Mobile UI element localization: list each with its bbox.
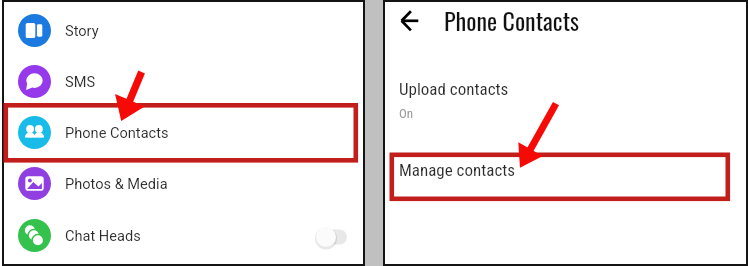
staticText: Photos & Media <box>65 175 168 192</box>
button[interactable]: Chat Heads <box>0 210 363 261</box>
button[interactable]: Chat Heads toggle <box>312 225 354 249</box>
staticText: Story <box>65 22 99 39</box>
staticText: Phone Contacts <box>65 124 169 141</box>
button[interactable]: Upload contacts <box>385 71 748 125</box>
staticText: SMS <box>65 73 96 90</box>
staticText: Chat Heads <box>65 227 141 244</box>
staticText: Upload contacts <box>399 79 509 99</box>
staticText: Manage contacts <box>399 160 516 180</box>
button[interactable]: Phone Contacts <box>0 107 363 158</box>
button[interactable]: Manage contacts <box>385 153 748 193</box>
staticText: On <box>399 106 414 121</box>
button[interactable]: Photos & Media <box>0 158 363 209</box>
staticText: Phone Contacts <box>444 2 580 38</box>
button[interactable]: Story <box>0 5 363 56</box>
button[interactable]: SMS <box>0 56 363 107</box>
button[interactable]: Back <box>399 7 425 33</box>
